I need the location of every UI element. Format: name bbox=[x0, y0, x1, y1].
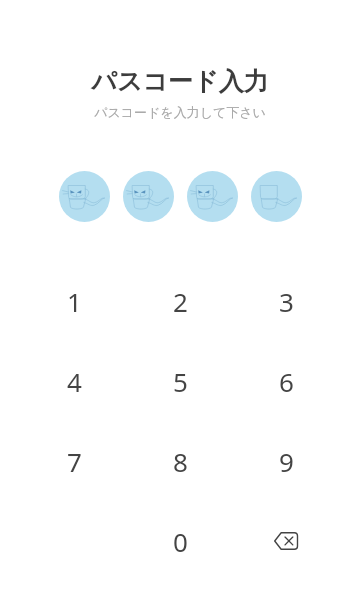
staticText: 6 bbox=[279, 364, 294, 399]
button[interactable]: 6 bbox=[233, 341, 339, 421]
staticText: 1 bbox=[67, 284, 82, 319]
button[interactable]: 5 bbox=[127, 341, 233, 421]
button[interactable]: 7 bbox=[21, 421, 127, 501]
staticText: 7 bbox=[67, 444, 82, 479]
staticText: 3 bbox=[279, 284, 294, 319]
staticText: 8 bbox=[173, 444, 188, 479]
button[interactable]: 8 bbox=[127, 421, 233, 501]
button[interactable]: Backspace bbox=[233, 501, 339, 581]
staticText: 4 bbox=[67, 364, 82, 399]
button[interactable]: 9 bbox=[233, 421, 339, 501]
staticText: パスコード入力 bbox=[91, 66, 269, 97]
button[interactable]: 0 bbox=[127, 501, 233, 581]
button[interactable]: 3 bbox=[233, 261, 339, 341]
button[interactable]: 2 bbox=[127, 261, 233, 341]
staticText: 5 bbox=[173, 364, 188, 399]
button[interactable]: 1 bbox=[21, 261, 127, 341]
button[interactable]: 4 bbox=[21, 341, 127, 421]
staticText: 2 bbox=[173, 284, 188, 319]
staticText: 9 bbox=[279, 444, 294, 479]
staticText: パスコードを入力して下さい bbox=[94, 104, 266, 120]
staticText: 0 bbox=[173, 524, 188, 559]
